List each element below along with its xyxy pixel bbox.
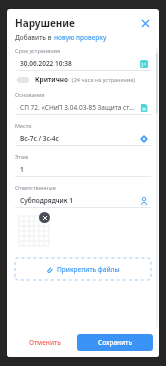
staticText: Срок устранения bbox=[15, 47, 61, 54]
button[interactable]: СП 72. «СНиП 3.04.03-85 Защита стр… bbox=[15, 101, 151, 114]
staticText: Вс-7с / 3с-4с bbox=[20, 134, 59, 143]
other: Выбрать место bbox=[140, 135, 148, 143]
staticText: Место bbox=[15, 122, 32, 129]
button[interactable]: 30.06.2022 10:38 bbox=[15, 57, 151, 70]
button[interactable]: Удалить вложение bbox=[39, 212, 50, 223]
button[interactable]: Отменить bbox=[19, 334, 71, 351]
button[interactable]: Вс-7с / 3с-4с bbox=[15, 132, 151, 145]
button[interactable]: Прикрепить файлы bbox=[15, 258, 151, 280]
staticText: Основание bbox=[15, 91, 45, 98]
staticText: Ответственные bbox=[15, 184, 56, 191]
staticText: Субподрядчик 1 bbox=[20, 196, 74, 205]
staticText: СП 72. «СНиП 3.04.03-85 Защита стр… bbox=[20, 103, 136, 112]
other: Календарь bbox=[140, 60, 148, 68]
staticText: Добавить в bbox=[15, 33, 54, 42]
button[interactable]: Закрыть bbox=[137, 15, 153, 31]
staticText: Этаж bbox=[15, 153, 29, 160]
staticText: Отменить bbox=[29, 338, 61, 347]
staticText: Сохранить bbox=[98, 338, 133, 347]
button[interactable]: 1 bbox=[15, 163, 151, 176]
button[interactable]: Критично bbox=[15, 75, 135, 84]
staticText: Прикрепить файлы bbox=[57, 265, 120, 274]
button[interactable]: новую проверку bbox=[54, 33, 107, 42]
staticText: 30.06.2022 10:38 bbox=[20, 59, 72, 68]
other: Документ bbox=[140, 104, 148, 112]
staticText: (24 часа на устранение) bbox=[72, 76, 135, 83]
staticText: новую проверку bbox=[54, 33, 107, 42]
staticText: 1 bbox=[20, 165, 24, 174]
staticText: Нарушение bbox=[15, 16, 137, 30]
button[interactable]: Вложение bbox=[19, 216, 49, 246]
staticText: Критично bbox=[35, 75, 69, 84]
button[interactable]: Субподрядчик 1 bbox=[15, 194, 151, 207]
other: Ответственные bbox=[140, 197, 148, 205]
button[interactable]: Сохранить bbox=[77, 334, 153, 351]
